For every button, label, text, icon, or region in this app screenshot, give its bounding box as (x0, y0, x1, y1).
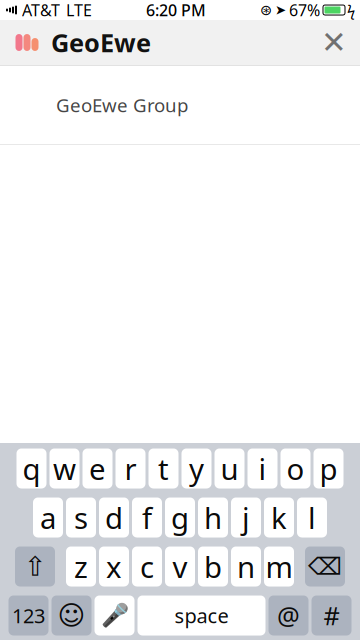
button[interactable]: d (99, 497, 129, 537)
staticText: k (271, 498, 287, 537)
button[interactable]: r (115, 448, 145, 488)
staticText: GeoEwe (51, 26, 151, 59)
staticText: o (286, 449, 304, 488)
staticText: ✕ (321, 25, 347, 60)
staticText: 🎤 (100, 603, 128, 628)
staticText: l (308, 498, 316, 537)
button[interactable]: k (264, 497, 294, 537)
staticText: s (74, 498, 88, 537)
button[interactable]: Delete (305, 546, 345, 586)
staticText: @ (277, 599, 300, 632)
button[interactable]: u (214, 448, 244, 488)
button[interactable]: y (181, 448, 211, 488)
button[interactable]: f (132, 497, 162, 537)
staticText: ϟ (347, 0, 355, 20)
staticText: r (124, 449, 136, 488)
staticText: u (220, 449, 238, 488)
staticText: w (53, 449, 76, 488)
staticText: n (237, 547, 255, 586)
button[interactable]: g (165, 497, 195, 537)
button[interactable]: Shift (15, 546, 55, 586)
staticText: GeoEwe Group (56, 93, 188, 117)
staticText: space (174, 602, 228, 629)
button[interactable]: Dictate (94, 595, 134, 635)
button[interactable]: v (165, 546, 195, 586)
button[interactable]: m (264, 546, 294, 586)
button[interactable]: Number sign (311, 595, 351, 635)
staticText: f (142, 498, 152, 537)
button[interactable]: b (198, 546, 228, 586)
staticText: ⇧ (24, 551, 46, 582)
staticText: # (323, 599, 339, 632)
staticText: h (204, 498, 222, 537)
staticText: x (106, 547, 122, 586)
staticText: ➤ (275, 2, 286, 17)
button[interactable]: a (33, 497, 63, 537)
staticText: q (22, 449, 40, 488)
button[interactable]: t (148, 448, 178, 488)
staticText: LTE (66, 0, 92, 21)
button[interactable]: p (313, 448, 343, 488)
button[interactable]: j (231, 497, 261, 537)
staticText: ⌫ (308, 553, 342, 580)
button[interactable]: At sign (268, 595, 308, 635)
button[interactable]: e (82, 448, 112, 488)
button[interactable]: o (280, 448, 310, 488)
staticText: z (74, 547, 88, 586)
staticText: v (172, 547, 187, 586)
button[interactable]: s (66, 497, 96, 537)
staticText: t (158, 449, 169, 488)
button[interactable]: Close (312, 20, 356, 64)
staticText: y (189, 449, 204, 488)
staticText: 6:20 PM (146, 0, 206, 21)
staticText: a (40, 498, 56, 537)
staticText: c (140, 547, 154, 586)
staticText: ☺ (57, 600, 85, 631)
staticText: p (319, 449, 337, 488)
staticText: g (171, 498, 189, 537)
button[interactable]: q (16, 448, 46, 488)
button[interactable]: h (198, 497, 228, 537)
button[interactable]: Numbers (8, 595, 48, 635)
button[interactable]: w (49, 448, 79, 488)
button[interactable]: Emoji (51, 595, 91, 635)
staticText: i (258, 449, 266, 488)
staticText: b (204, 547, 222, 586)
staticText: 67% (289, 0, 320, 21)
staticText: AT&T (22, 0, 60, 21)
button[interactable]: c (132, 546, 162, 586)
staticText: 123 (12, 602, 45, 629)
staticText: ⊛ (260, 2, 272, 18)
staticText: e (89, 449, 106, 488)
button[interactable]: l (297, 497, 327, 537)
staticText: d (105, 498, 123, 537)
button[interactable]: z (66, 546, 96, 586)
button[interactable]: space (137, 595, 265, 635)
staticText: m (265, 547, 292, 586)
staticText: j (242, 498, 250, 537)
button[interactable]: i (247, 448, 277, 488)
button[interactable]: x (99, 546, 129, 586)
button[interactable]: n (231, 546, 261, 586)
